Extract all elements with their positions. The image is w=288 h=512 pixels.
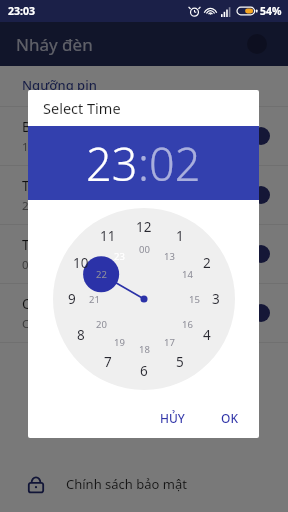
- staticText: Ngưỡng pin: [22, 76, 97, 94]
- staticText: 23: [114, 250, 125, 263]
- staticText: 15%: [22, 139, 45, 155]
- staticText: Chậm: [22, 316, 54, 332]
- staticText: 13: [164, 250, 175, 263]
- staticText: 12: [136, 218, 152, 236]
- staticText: 54%: [260, 4, 282, 18]
- staticText: 00: [139, 243, 150, 256]
- staticText: 5: [176, 353, 184, 371]
- staticText: Thời gian kết thúc: [22, 236, 136, 254]
- staticText: Chế độ nhấp nháy: [22, 295, 138, 313]
- staticText: :: [138, 133, 149, 194]
- staticText: 07:00: [22, 257, 52, 273]
- staticText: 21: [89, 293, 100, 306]
- staticText: Thời gian bắt đầu: [22, 177, 133, 195]
- button[interactable]: Chính sách bảo mật: [0, 456, 288, 512]
- staticText: 4: [203, 326, 211, 344]
- staticText: Nháy đèn: [16, 33, 93, 56]
- staticText: 15: [189, 293, 200, 306]
- button[interactable]: OK: [212, 404, 247, 432]
- staticText: 10: [73, 254, 89, 272]
- staticText: 8: [77, 326, 85, 344]
- staticText: OK: [221, 410, 238, 426]
- staticText: 14: [182, 268, 193, 281]
- button[interactable]: Thời gian bắt đầu: [0, 166, 288, 224]
- button[interactable]: Toggle flashlight: [240, 27, 274, 61]
- staticText: 1: [176, 227, 184, 245]
- staticText: 6: [140, 362, 148, 380]
- staticText: 3: [212, 290, 220, 308]
- staticText: 9: [68, 290, 76, 308]
- staticText: Select Time: [43, 98, 121, 118]
- staticText: 16: [182, 318, 193, 331]
- staticText: Bật khi pin dưới: [22, 118, 123, 136]
- button[interactable]: 1: [53, 208, 235, 390]
- staticText: 17: [164, 336, 175, 349]
- staticText: 2: [203, 254, 211, 272]
- staticText: 23:03: [8, 4, 35, 18]
- button[interactable]: 23: [86, 133, 138, 194]
- staticText: 11: [100, 227, 116, 245]
- staticText: 23:02: [22, 198, 52, 214]
- staticText: 19: [114, 336, 125, 349]
- button[interactable]: 02: [149, 133, 201, 194]
- staticText: Chính sách bảo mật: [66, 475, 187, 493]
- button[interactable]: Bật khi pin dưới: [0, 107, 288, 165]
- staticText: 7: [104, 353, 112, 371]
- button[interactable]: HỦY: [151, 404, 194, 432]
- staticText: 20: [96, 318, 107, 331]
- staticText: 18: [139, 343, 150, 356]
- button[interactable]: Chế độ nhấp nháy: [0, 284, 288, 342]
- staticText: HỦY: [160, 410, 185, 426]
- staticText: 22: [96, 268, 107, 281]
- button[interactable]: Thời gian kết thúc: [0, 225, 288, 283]
